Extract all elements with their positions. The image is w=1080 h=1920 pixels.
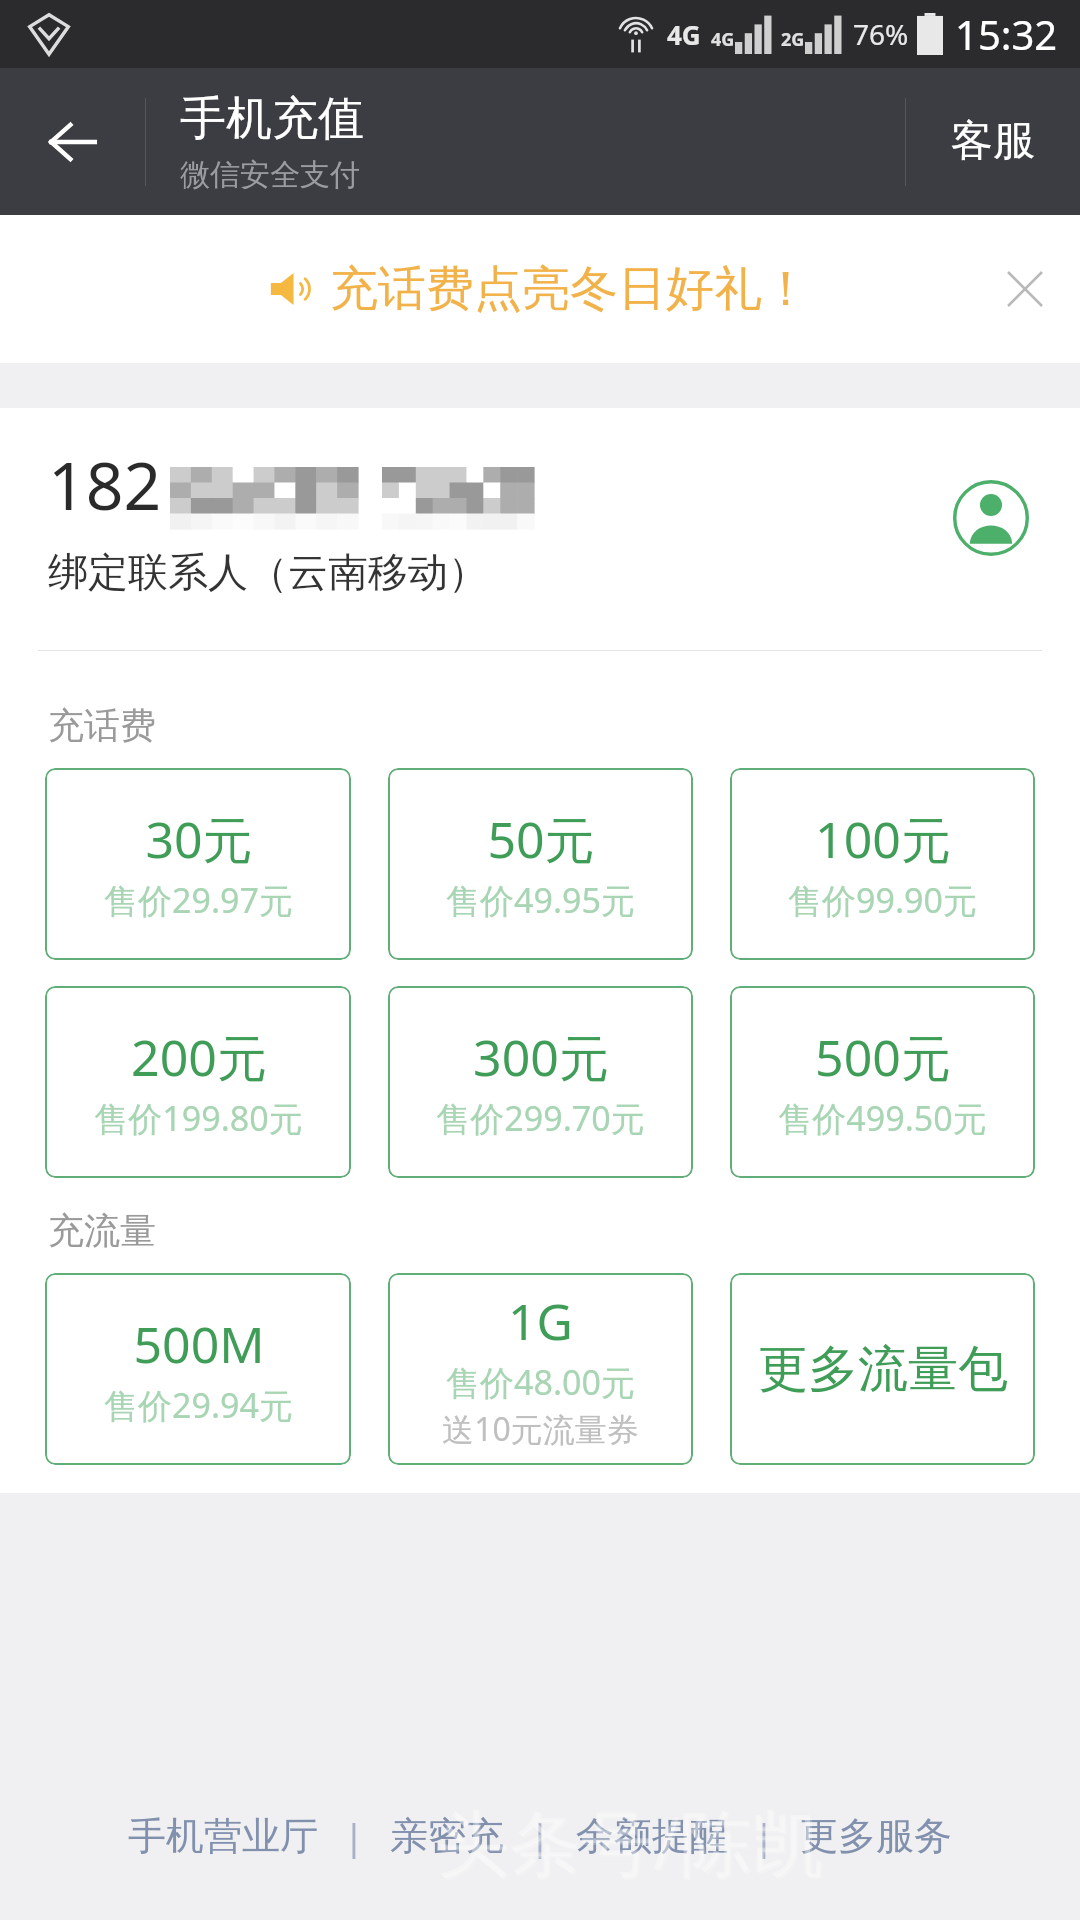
staticText: | <box>530 1812 550 1861</box>
staticText: 售价29.97元 <box>104 877 293 923</box>
button[interactable]: Back <box>0 68 145 215</box>
staticText: 100元 <box>815 805 951 873</box>
staticText: 客服 <box>951 115 1035 168</box>
button[interactable]: 亲密充 <box>386 1804 508 1868</box>
button[interactable]: 30元 <box>45 768 351 960</box>
staticText: 充话费 <box>48 703 156 748</box>
button[interactable]: 充话费点亮冬日好礼！ <box>0 215 1080 363</box>
staticText: 500元 <box>815 1023 951 1091</box>
staticText: 售价199.80元 <box>94 1095 303 1141</box>
staticText: 更多流量包 <box>758 1338 1008 1401</box>
staticText: 亲密充 <box>390 1812 504 1860</box>
staticText: 微信安全支付 <box>180 156 360 194</box>
staticText: 500M <box>133 1310 265 1378</box>
staticText: 售价29.94元 <box>104 1382 293 1428</box>
staticText: 售价499.50元 <box>778 1095 987 1141</box>
staticText: | <box>344 1812 364 1861</box>
button[interactable]: 余额提醒 <box>572 1804 732 1868</box>
staticText: 头条号/陈凯 <box>439 1794 826 1892</box>
staticText: 4G <box>667 17 701 52</box>
staticText: 充流量 <box>48 1208 156 1253</box>
staticText: 2G <box>781 27 805 52</box>
button[interactable]: 更多服务 <box>796 1804 956 1868</box>
staticText: | <box>754 1812 774 1861</box>
staticText: 50元 <box>487 805 595 873</box>
button[interactable]: 500元 <box>730 986 1035 1178</box>
staticText: 15:32 <box>955 7 1058 61</box>
button[interactable]: 客服 <box>906 68 1080 215</box>
button[interactable]: 100元 <box>730 768 1035 960</box>
staticText: 1G <box>508 1287 573 1355</box>
button[interactable]: 1G <box>388 1273 693 1465</box>
staticText: 送10元流量券 <box>442 1407 639 1451</box>
staticText: 4G <box>711 27 735 52</box>
staticText: 余额提醒 <box>576 1812 728 1860</box>
staticText: 绑定联系人（云南移动） <box>48 547 488 597</box>
staticText: 售价299.70元 <box>436 1095 645 1141</box>
staticText: 300元 <box>473 1023 609 1091</box>
button[interactable]: 300元 <box>388 986 693 1178</box>
staticText: 30元 <box>145 805 253 873</box>
staticText: 充话费点亮冬日好礼！ <box>330 259 810 319</box>
staticText: 手机充值 <box>180 90 364 148</box>
staticText: 售价49.95元 <box>446 877 635 923</box>
button[interactable]: 手机营业厅 <box>124 1804 322 1868</box>
button[interactable]: 500M <box>45 1273 351 1465</box>
staticText: 手机营业厅 <box>128 1812 318 1860</box>
button[interactable]: Contacts <box>946 473 1036 563</box>
staticText: 售价48.00元 <box>446 1359 635 1405</box>
staticText: 182 <box>48 439 162 529</box>
button[interactable]: Close <box>970 234 1080 344</box>
staticText: 76% <box>853 15 909 53</box>
button[interactable]: 更多流量包 <box>730 1273 1035 1465</box>
button[interactable]: 182 <box>0 408 1080 628</box>
staticText: 售价99.90元 <box>788 877 977 923</box>
staticText: 更多服务 <box>800 1812 952 1860</box>
staticText: 头条号/陈凯 <box>437 1792 824 1890</box>
button[interactable]: 50元 <box>388 768 693 960</box>
button[interactable]: 200元 <box>45 986 351 1178</box>
staticText: 200元 <box>131 1023 267 1091</box>
